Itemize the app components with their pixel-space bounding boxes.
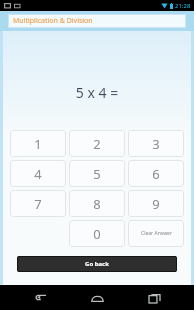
staticText: 7 — [34, 195, 42, 213]
button[interactable]: 8 — [69, 190, 125, 217]
staticText: 6 — [152, 165, 160, 183]
staticText: Multiplication & Division — [13, 16, 93, 26]
staticText: 5 — [93, 165, 101, 183]
button[interactable]: Home — [80, 285, 114, 310]
button[interactable]: 5 — [69, 160, 125, 187]
staticText: 9 — [152, 195, 160, 213]
staticText: 2 — [93, 135, 101, 153]
button[interactable]: 2 — [69, 130, 125, 157]
staticText: 8 — [93, 195, 101, 213]
button[interactable]: 1 — [10, 130, 66, 157]
staticText: 1 — [34, 135, 42, 153]
button[interactable]: Recent apps — [137, 285, 171, 310]
button[interactable]: 0 — [69, 220, 125, 247]
staticText: Go back — [85, 260, 109, 268]
staticText: 4 — [34, 165, 42, 183]
button[interactable]: Multiplication & Division — [8, 14, 186, 28]
button[interactable]: Go back — [17, 256, 177, 272]
button[interactable]: Clear Answer — [128, 220, 184, 247]
staticText: 5 x 4 = — [3, 83, 191, 102]
staticText: 21:28 — [175, 2, 191, 10]
button[interactable]: 3 — [128, 130, 184, 157]
staticText: 0 — [93, 225, 101, 243]
staticText: 3 — [152, 135, 160, 153]
staticText: Clear Answer — [141, 230, 172, 237]
button[interactable]: 6 — [128, 160, 184, 187]
button[interactable]: 7 — [10, 190, 66, 217]
button[interactable]: 4 — [10, 160, 66, 187]
button[interactable]: Back — [23, 285, 57, 310]
button[interactable]: 9 — [128, 190, 184, 217]
